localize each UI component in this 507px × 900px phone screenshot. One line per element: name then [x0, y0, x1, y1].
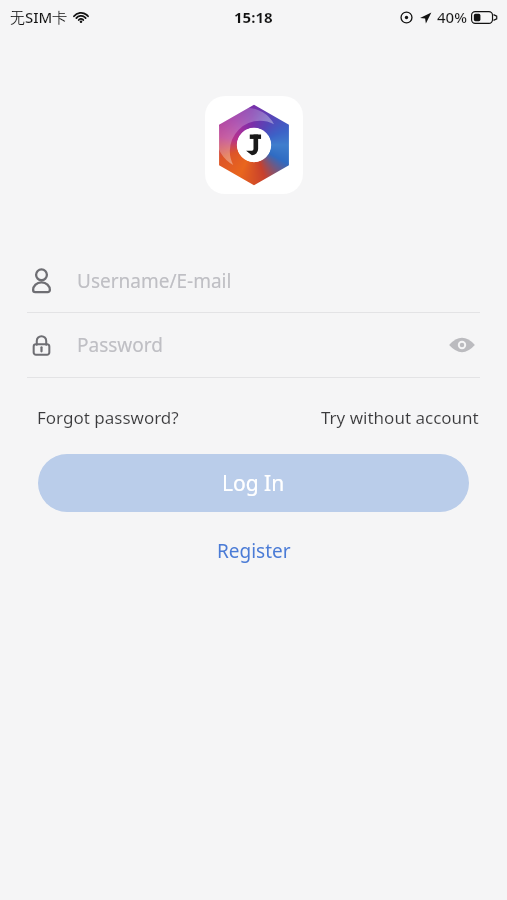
button[interactable]: Log In — [38, 454, 469, 512]
staticText: 无SIM卡 — [10, 7, 68, 27]
button[interactable]: Try without account — [321, 401, 479, 434]
staticText: Log In — [222, 469, 285, 498]
button[interactable]: Password — [0, 313, 507, 377]
staticText: Password — [77, 332, 163, 358]
button[interactable]: Register — [197, 532, 311, 570]
staticText: 15:18 — [234, 7, 273, 27]
staticText: Try without account — [321, 406, 479, 429]
button[interactable]: Forgot password? — [37, 401, 179, 434]
staticText: Forgot password? — [37, 406, 179, 429]
staticText: Register — [217, 538, 291, 564]
staticText: Username/E-mail — [77, 268, 232, 294]
button[interactable]: Show password — [441, 324, 483, 366]
staticText: 40% — [437, 7, 467, 27]
button[interactable]: Username/E-mail — [0, 249, 507, 312]
